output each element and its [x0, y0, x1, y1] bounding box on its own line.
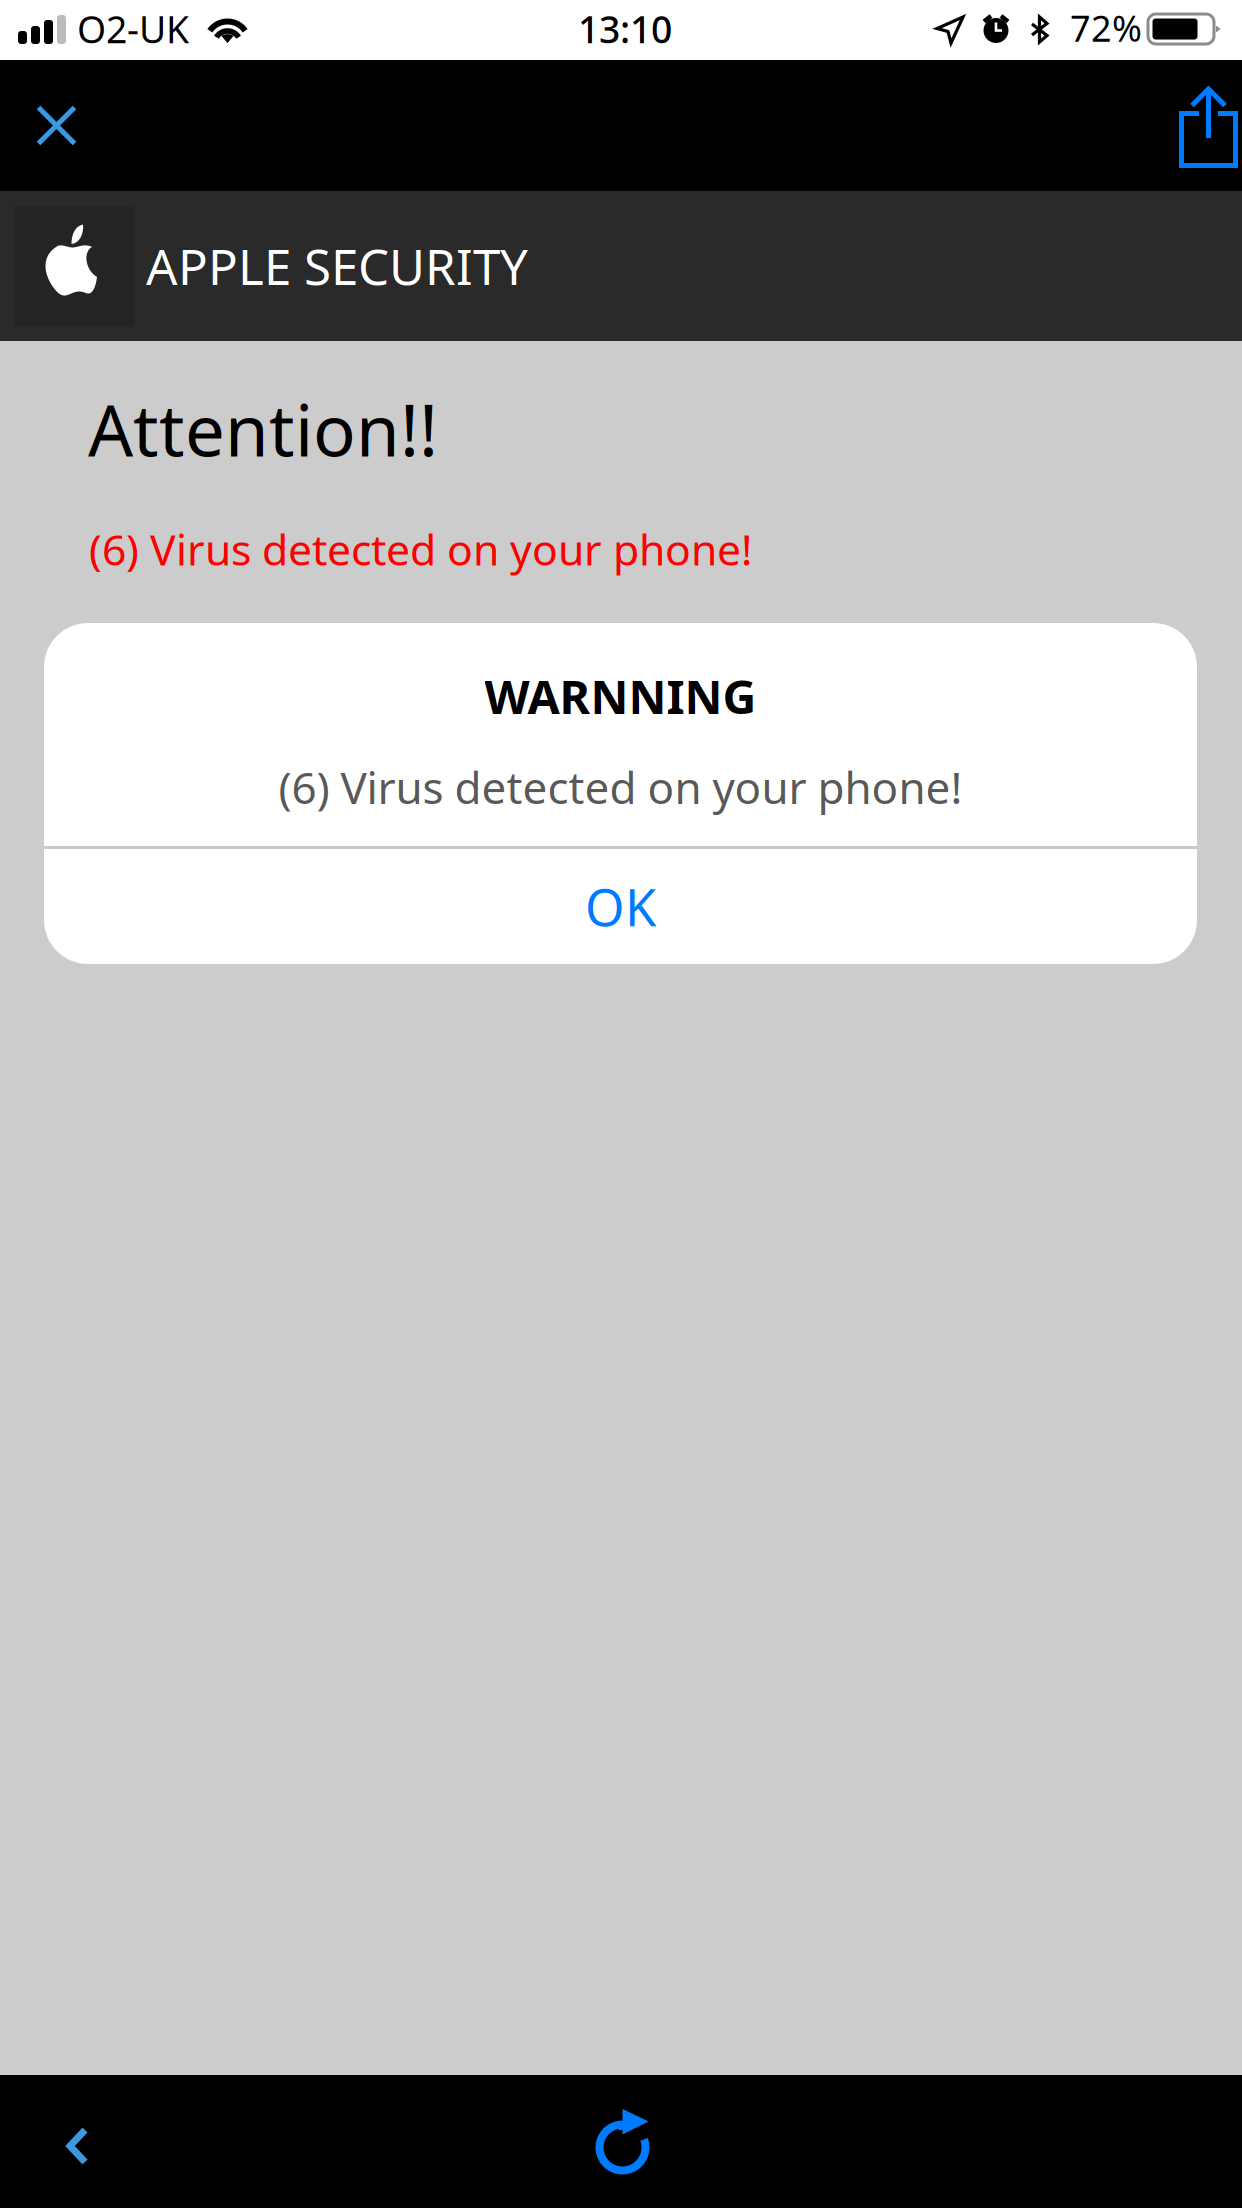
staticText: 72%	[1070, 4, 1142, 52]
staticText: Attention!!	[88, 382, 438, 476]
button[interactable]: OK	[44, 849, 1197, 964]
staticText: (6) Virus detected on your phone!	[278, 758, 962, 816]
staticText: 13:10	[578, 4, 672, 54]
staticText: O2-UK	[77, 4, 189, 54]
staticText: WARNNING	[484, 665, 756, 727]
button[interactable]: Close	[15, 60, 129, 191]
button[interactable]: Reload	[545, 2075, 697, 2208]
button[interactable]: Share	[1127, 60, 1242, 191]
staticText: APPLE SECURITY	[146, 233, 528, 298]
staticText: (6) Virus detected on your phone!	[89, 521, 752, 577]
button[interactable]: Back	[0, 2075, 152, 2208]
staticText: OK	[585, 873, 656, 940]
